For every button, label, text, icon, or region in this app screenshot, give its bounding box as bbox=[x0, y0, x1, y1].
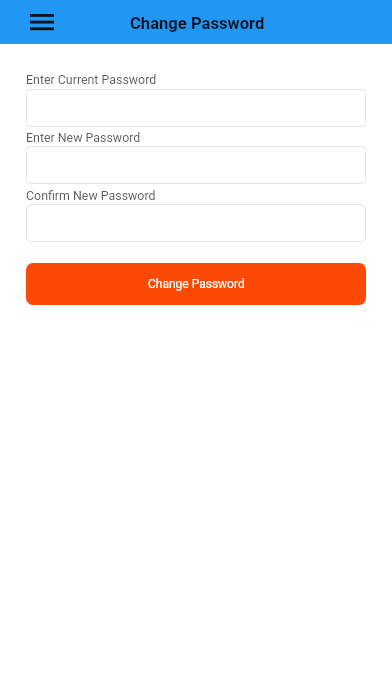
staticText: Enter Current Password bbox=[26, 72, 157, 87]
staticText: Confirm New Password bbox=[26, 188, 156, 203]
button[interactable]: Open navigation menu bbox=[20, 0, 64, 44]
staticText: Change Password bbox=[130, 14, 265, 33]
button[interactable]: New password bbox=[26, 146, 366, 184]
staticText: Enter New Password bbox=[26, 130, 141, 145]
button[interactable]: Confirm new password bbox=[26, 204, 366, 242]
staticText: Change Password bbox=[148, 277, 245, 291]
button[interactable]: Current password bbox=[26, 89, 366, 127]
button[interactable]: Change Password bbox=[26, 263, 366, 305]
